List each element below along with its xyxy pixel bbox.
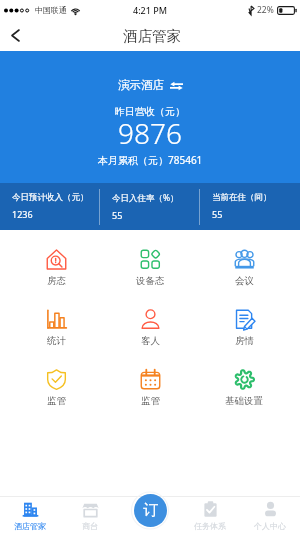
button[interactable]: 统计 (9, 292, 103, 352)
staticText: 昨日营收（元） (115, 105, 185, 118)
button[interactable]: 酒店管家 (0, 496, 60, 533)
staticText: 房态 (47, 275, 66, 287)
staticText: 客人 (141, 335, 160, 347)
staticText: 本月累积（元）785461 (98, 153, 203, 167)
staticText: 订 (143, 501, 158, 520)
staticText: 设备态 (136, 275, 165, 287)
staticText: 基础设置 (225, 395, 263, 407)
staticText: 房情 (235, 335, 254, 347)
staticText: 演示酒店 (118, 78, 164, 92)
staticText: 今日入住率（%） (112, 192, 179, 204)
button[interactable]: 个人中心 (240, 496, 300, 533)
staticText: 会议 (235, 275, 254, 287)
staticText: 监管 (141, 395, 160, 407)
staticText: 1236 (12, 208, 33, 220)
button[interactable]: 当前在住（间） (200, 183, 300, 230)
button[interactable]: 今日入住率（%） (100, 183, 200, 230)
staticText: 当前在住（间） (212, 192, 272, 203)
button[interactable]: 任务体系 (180, 496, 240, 533)
staticText: 酒店管家 (14, 521, 46, 531)
staticText: 55 (112, 209, 123, 221)
button[interactable]: 会议 (197, 230, 291, 292)
staticText: 22% (257, 4, 274, 16)
staticText: 个人中心 (254, 521, 286, 531)
button[interactable]: 监管 (103, 352, 197, 412)
button[interactable]: 基础设置 (197, 352, 291, 412)
staticText: 监管 (47, 395, 66, 407)
staticText: 4:21 PM (133, 4, 167, 16)
button[interactable]: 客人 (103, 292, 197, 352)
button[interactable]: 房态 (9, 230, 103, 292)
button[interactable]: 订 (134, 494, 167, 527)
button[interactable]: 监管 (9, 352, 103, 412)
staticText: 商台 (82, 521, 98, 531)
staticText: 55 (212, 208, 223, 220)
staticText: 9876 (118, 114, 182, 152)
button[interactable]: 设备态 (103, 230, 197, 292)
button[interactable]: 房情 (197, 292, 291, 352)
button[interactable]: Back (0, 20, 30, 51)
button[interactable]: 今日预计收入（元） (0, 183, 100, 230)
staticText: 统计 (47, 335, 66, 347)
button[interactable]: 商台 (60, 496, 120, 533)
staticText: 任务体系 (194, 521, 226, 531)
staticText: 今日预计收入（元） (12, 192, 89, 203)
staticText: 酒店管家 (123, 27, 181, 45)
button[interactable]: 演示酒店 (118, 78, 183, 92)
staticText: 中国联通 (35, 5, 67, 15)
